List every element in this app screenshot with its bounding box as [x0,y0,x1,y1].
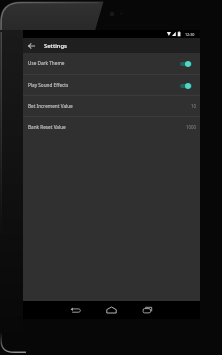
staticText: 10 [191,103,197,109]
button[interactable]: Navigate back [23,38,39,53]
staticText: Use Dark Theme [28,60,65,66]
staticText: 12:30 [185,32,195,37]
button[interactable]: Play Sound Effects [23,75,200,95]
staticText: 1000 [186,124,197,130]
staticText: Settings [44,42,67,50]
button[interactable]: Recent apps [129,301,165,319]
staticText: Play Sound Effects [28,82,69,88]
button[interactable]: Bet Increment Value [23,96,200,116]
button[interactable]: Use Dark Theme [23,53,200,73]
button[interactable]: Home [93,301,129,319]
button[interactable]: Bank Reset Value [23,117,200,137]
staticText: Bet Increment Value [28,103,73,109]
staticText: Bank Reset Value [28,124,66,130]
button[interactable]: Navigate back [57,301,93,319]
